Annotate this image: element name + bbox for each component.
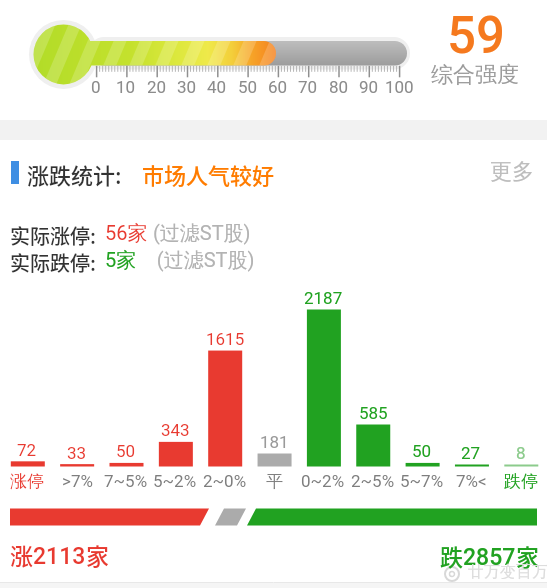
staticText: 涨停 bbox=[10, 471, 44, 492]
staticText: 平 bbox=[266, 471, 283, 492]
staticText: 跌停 bbox=[504, 471, 538, 492]
staticText: 廿万变百万 bbox=[468, 562, 547, 582]
staticText: 10 bbox=[116, 77, 136, 97]
staticText: 7%< bbox=[456, 471, 487, 491]
staticText: 343 bbox=[161, 420, 190, 440]
staticText: 27 bbox=[461, 443, 481, 463]
staticText: (过滤ST股) bbox=[148, 221, 251, 246]
staticText: 60 bbox=[268, 77, 288, 97]
staticText: 50 bbox=[238, 77, 258, 97]
staticText: 5~7% bbox=[400, 471, 444, 491]
staticText: 72 bbox=[17, 440, 37, 460]
staticText: 市场人气较好 bbox=[142, 158, 275, 190]
staticText: 33 bbox=[67, 443, 87, 463]
button[interactable]: 更多 bbox=[482, 152, 542, 192]
staticText: 7~5% bbox=[104, 471, 148, 491]
staticText: 2187 bbox=[304, 288, 343, 308]
staticText: 更多 bbox=[490, 158, 534, 186]
staticText: 2857 bbox=[463, 544, 516, 571]
staticText: >7% bbox=[62, 471, 93, 491]
staticText: 8 bbox=[516, 443, 526, 463]
staticText: 综合强度 bbox=[431, 61, 519, 89]
staticText: 5~2% bbox=[153, 471, 197, 491]
staticText: 实际跌停: bbox=[10, 248, 105, 277]
staticText: 90 bbox=[359, 77, 379, 97]
staticText: (过滤ST股) bbox=[137, 248, 255, 273]
staticText: 100 bbox=[385, 77, 414, 97]
staticText: 20 bbox=[147, 77, 167, 97]
staticText: 2~5% bbox=[351, 471, 395, 491]
staticText: 实际涨停: bbox=[10, 221, 105, 250]
staticText: 50 bbox=[412, 441, 432, 461]
staticText: 80 bbox=[329, 77, 349, 97]
staticText: 70 bbox=[298, 77, 318, 97]
staticText: 涨 bbox=[10, 538, 33, 571]
staticText: 59 bbox=[447, 6, 505, 66]
staticText: 40 bbox=[207, 77, 227, 97]
staticText: 涨跌统计: bbox=[27, 158, 122, 190]
staticText: 56家 bbox=[105, 221, 148, 246]
staticText: 1615 bbox=[206, 329, 245, 349]
staticText: 50 bbox=[116, 441, 136, 461]
staticText: 2~0% bbox=[203, 471, 247, 491]
staticText: 0~2% bbox=[301, 471, 345, 491]
staticText: 跌 bbox=[440, 539, 463, 572]
staticText: 5家 bbox=[105, 248, 137, 273]
staticText: 585 bbox=[359, 403, 388, 423]
staticText: 181 bbox=[260, 432, 289, 452]
staticText: 30 bbox=[177, 77, 197, 97]
staticText: 家 bbox=[86, 538, 109, 571]
staticText: 2113 bbox=[33, 543, 86, 570]
staticText: 家 bbox=[516, 539, 539, 572]
staticText: 0 bbox=[91, 77, 101, 97]
